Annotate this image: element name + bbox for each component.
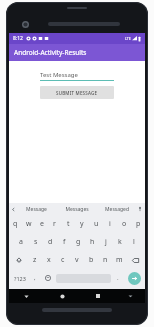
staticText: k [118, 237, 122, 247]
button[interactable]: u [89, 215, 103, 233]
staticText: Test Message [40, 71, 78, 79]
button[interactable]: r [48, 215, 61, 233]
staticText: 8:12 [13, 35, 23, 42]
staticText: p [136, 219, 141, 229]
staticText: b [89, 255, 94, 265]
staticText: l [133, 237, 135, 247]
button[interactable]: Messages [57, 203, 97, 215]
staticText: t [67, 219, 70, 229]
staticText: m [116, 255, 123, 265]
staticText: a [19, 237, 23, 247]
staticText: o [122, 219, 127, 229]
button[interactable]: k [113, 233, 127, 251]
button[interactable]: x [42, 251, 56, 269]
button[interactable]: Test Message [40, 71, 114, 81]
staticText: u [94, 219, 99, 229]
button[interactable]: SUBMIT MESSAGE [40, 86, 114, 99]
staticText: Message [26, 206, 47, 213]
staticText: y [80, 219, 84, 229]
staticText: q [13, 219, 18, 229]
button[interactable]: f [57, 233, 71, 251]
button[interactable]: Voice input [137, 206, 143, 212]
button[interactable]: j [99, 233, 113, 251]
button[interactable]: l [127, 233, 141, 251]
button[interactable]: m [112, 251, 126, 269]
button[interactable]: Emoji [40, 269, 55, 287]
button[interactable]: Hide keyboard [116, 289, 145, 303]
staticText: LTE [125, 36, 131, 41]
button[interactable]: Backspace [126, 251, 145, 269]
staticText: c [61, 255, 65, 265]
button[interactable]: Message [16, 203, 57, 215]
button[interactable]: v [70, 251, 84, 269]
button[interactable]: Messaged [97, 203, 137, 215]
staticText: z [33, 255, 37, 265]
staticText: i [109, 219, 111, 229]
button[interactable]: y [75, 215, 89, 233]
button[interactable]: a [13, 233, 28, 251]
button[interactable]: , [30, 269, 40, 287]
button[interactable]: g [71, 233, 85, 251]
button[interactable]: Recents [80, 289, 116, 303]
button[interactable]: Shift [9, 251, 28, 269]
staticText: Messages [65, 206, 89, 213]
staticText: e [40, 219, 44, 229]
staticText: s [34, 237, 38, 247]
staticText: ?123 [14, 275, 26, 282]
staticText: SUBMIT MESSAGE [56, 90, 98, 96]
button[interactable]: z [28, 251, 42, 269]
button[interactable]: Back [9, 289, 44, 303]
button[interactable]: d [43, 233, 57, 251]
button[interactable]: More suggestions [11, 207, 16, 212]
staticText: Android-Activity-Results [14, 48, 87, 57]
button[interactable]: t [61, 215, 75, 233]
staticText: f [63, 237, 66, 247]
staticText: g [76, 237, 81, 247]
button[interactable]: Enter [128, 272, 141, 285]
staticText: v [75, 255, 79, 265]
button[interactable]: q [9, 215, 22, 233]
button[interactable]: h [85, 233, 99, 251]
button[interactable]: ?123 [9, 269, 30, 287]
button[interactable]: i [103, 215, 117, 233]
button[interactable]: b [84, 251, 98, 269]
staticText: h [90, 237, 95, 247]
button[interactable]: p [131, 215, 145, 233]
staticText: d [48, 237, 53, 247]
staticText: x [47, 255, 51, 265]
button[interactable]: s [28, 233, 43, 251]
staticText: , [34, 274, 36, 282]
button[interactable]: c [56, 251, 70, 269]
staticText: . [117, 274, 119, 282]
button[interactable]: o [117, 215, 131, 233]
button[interactable]: . [112, 269, 123, 287]
button[interactable]: Home [44, 289, 80, 303]
staticText: Messaged [105, 206, 129, 213]
staticText: j [105, 237, 107, 247]
button[interactable]: w [22, 215, 35, 233]
button[interactable]: e [35, 215, 48, 233]
staticText: w [26, 219, 32, 229]
button[interactable]: n [98, 251, 112, 269]
staticText: r [53, 219, 56, 229]
staticText: n [103, 255, 108, 265]
